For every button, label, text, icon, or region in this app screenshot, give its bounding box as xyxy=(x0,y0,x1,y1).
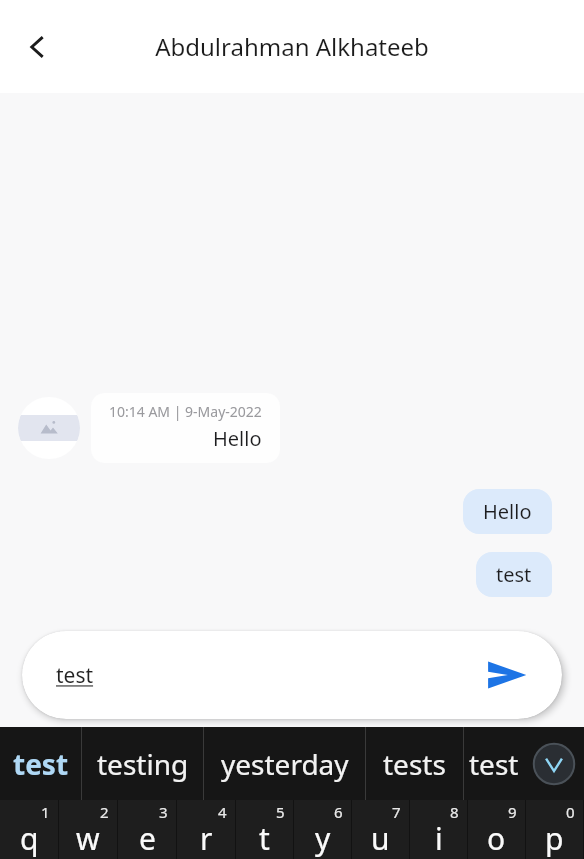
button[interactable]: test xyxy=(464,727,524,800)
staticText: 9 xyxy=(508,802,517,822)
staticText: t xyxy=(259,818,270,859)
button[interactable]: 8 xyxy=(410,800,467,859)
button[interactable]: 1 xyxy=(0,800,58,859)
staticText: i xyxy=(435,818,443,859)
staticText: y xyxy=(315,818,331,859)
button[interactable]: tests xyxy=(366,727,463,800)
staticText: p xyxy=(545,818,564,859)
button[interactable]: More suggestions xyxy=(524,727,584,800)
button[interactable]: 7 xyxy=(352,800,409,859)
staticText: w xyxy=(76,818,100,859)
staticText: 6 xyxy=(334,802,343,822)
button[interactable]: 0 xyxy=(526,800,583,859)
staticText: test xyxy=(56,661,482,690)
button[interactable]: 3 xyxy=(118,800,176,859)
staticText: 0 xyxy=(566,802,575,822)
button[interactable]: Back xyxy=(12,21,64,73)
button[interactable]: test xyxy=(476,552,552,597)
staticText: test xyxy=(496,561,532,588)
button[interactable]: Hello xyxy=(463,489,552,534)
button[interactable]: 9 xyxy=(468,800,525,859)
staticText: tests xyxy=(383,745,446,783)
staticText: 8 xyxy=(450,802,459,822)
staticText: 2 xyxy=(100,802,109,822)
staticText: u xyxy=(371,818,390,859)
button[interactable]: 10:14 AM | 9-May-2022 xyxy=(91,393,280,463)
staticText: yesterday xyxy=(221,745,349,783)
staticText: 7 xyxy=(392,802,401,822)
button[interactable]: test xyxy=(0,727,81,800)
staticText: Hello xyxy=(213,425,262,452)
staticText: testing xyxy=(97,745,189,783)
staticText: 1 xyxy=(41,802,50,822)
staticText: Abdulrahman Alkhateeb xyxy=(155,30,429,63)
staticText: test xyxy=(13,745,69,783)
staticText: 4 xyxy=(218,802,227,822)
staticText: o xyxy=(487,818,506,859)
button[interactable]: test xyxy=(22,631,562,719)
button[interactable]: 4 xyxy=(177,800,235,859)
staticText: 5 xyxy=(276,802,285,822)
staticText: r xyxy=(200,818,213,859)
staticText: q xyxy=(20,818,39,859)
staticText: e xyxy=(139,818,156,859)
button[interactable]: Send xyxy=(482,650,532,700)
staticText: 3 xyxy=(159,802,168,822)
staticText: 10:14 AM | 9-May-2022 xyxy=(109,402,262,421)
button[interactable]: testing xyxy=(82,727,203,800)
button[interactable]: 5 xyxy=(236,800,293,859)
staticText: test xyxy=(469,745,519,783)
staticText: Hello xyxy=(483,498,532,525)
button[interactable]: 6 xyxy=(294,800,351,859)
button[interactable]: yesterday xyxy=(204,727,365,800)
button[interactable]: 2 xyxy=(59,800,117,859)
